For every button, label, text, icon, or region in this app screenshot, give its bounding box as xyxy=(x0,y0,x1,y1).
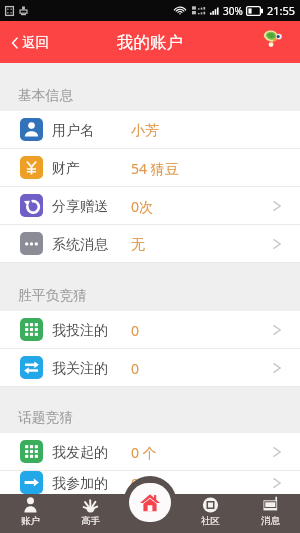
staticText: 21:55 xyxy=(267,3,296,18)
staticText: 消息 xyxy=(261,515,280,527)
button[interactable]: Home xyxy=(129,483,171,522)
staticText: 系统消息 xyxy=(52,236,108,254)
staticText: 0 xyxy=(131,321,140,340)
staticText: 财产 xyxy=(52,160,80,178)
staticText: 0次 xyxy=(131,197,154,216)
staticText: 我投注的 xyxy=(52,322,108,340)
staticText: 高手 xyxy=(81,515,100,527)
staticText: 基本信息 xyxy=(18,87,74,104)
staticText: 分享赠送 xyxy=(52,198,108,216)
staticText: 胜平负竞猜 xyxy=(18,287,87,304)
staticText: 30% xyxy=(223,4,243,18)
button[interactable]: 我发起的 xyxy=(0,433,300,471)
button[interactable]: 账户 xyxy=(0,494,60,533)
button[interactable]: 社区 xyxy=(180,494,240,533)
button[interactable]: 财产 xyxy=(0,149,300,187)
button[interactable]: 我关注的 xyxy=(0,349,300,387)
staticText: 0 个 xyxy=(131,474,157,493)
button[interactable]: 高手 xyxy=(60,494,120,533)
button[interactable]: 我参加的 xyxy=(0,471,300,494)
button[interactable]: 系统消息 xyxy=(0,225,300,263)
staticText: 0 个 xyxy=(131,443,157,462)
staticText: 社区 xyxy=(201,515,220,527)
staticText: 我参加的 xyxy=(52,475,108,493)
button[interactable]: 用户名 xyxy=(0,111,300,149)
button[interactable]: 消息 xyxy=(240,494,300,533)
button[interactable]: 分享赠送 xyxy=(0,187,300,225)
button[interactable]: Mascot xyxy=(263,27,283,47)
staticText: 54 猜豆 xyxy=(131,159,179,178)
staticText: 用户名 xyxy=(52,122,94,140)
staticText: 账户 xyxy=(21,515,40,527)
staticText: 小芳 xyxy=(131,122,159,140)
staticText: 我关注的 xyxy=(52,360,108,378)
staticText: 返回 xyxy=(22,34,49,51)
staticText: 我的账户 xyxy=(117,32,183,53)
button[interactable]: 返回 xyxy=(0,26,59,59)
staticText: 无 xyxy=(131,236,145,254)
button[interactable]: 我投注的 xyxy=(0,311,300,349)
staticText: 0 xyxy=(131,359,140,378)
staticText: 话题竞猜 xyxy=(18,409,74,426)
staticText: 我发起的 xyxy=(52,444,108,462)
